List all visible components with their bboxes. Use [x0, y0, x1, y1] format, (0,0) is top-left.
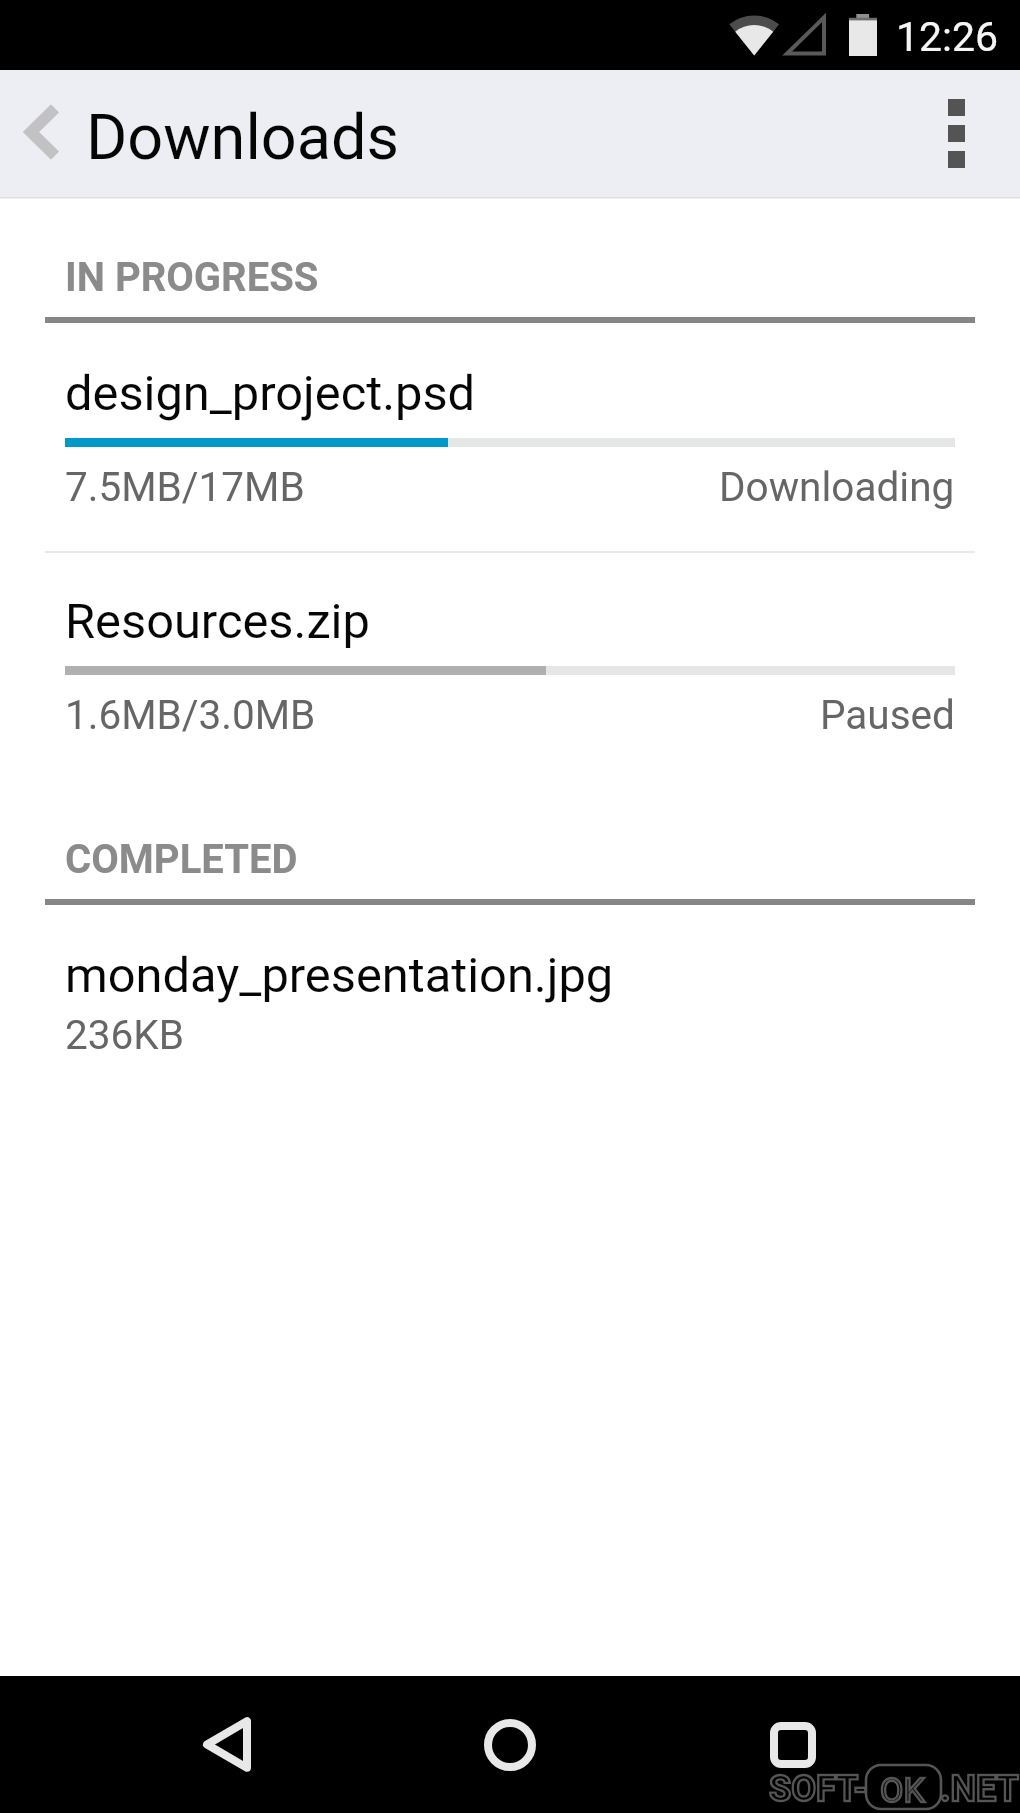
staticText: 12:26: [896, 13, 999, 61]
staticText: design_project.psd: [65, 365, 476, 422]
button[interactable]: Back: [87, 1676, 367, 1813]
button[interactable]: Home: [370, 1676, 650, 1813]
staticText: SOFT-: [769, 1768, 868, 1810]
staticText: IN PROGRESS: [65, 254, 319, 301]
button[interactable]: Recent apps: [653, 1676, 933, 1813]
button[interactable]: design_project.psd: [0, 347, 1020, 547]
staticText: Downloading: [719, 463, 955, 510]
button[interactable]: More options: [907, 70, 1005, 197]
staticText: 236KB: [65, 1011, 184, 1058]
staticText: Resources.zip: [65, 593, 370, 650]
staticText: OK: [880, 1770, 925, 1810]
staticText: COMPLETED: [65, 836, 298, 883]
staticText: 1.6MB/3.0MB: [65, 691, 316, 738]
staticText: .NET: [940, 1768, 1019, 1810]
staticText: Paused: [820, 691, 955, 738]
button[interactable]: Navigate up: [0, 70, 87, 197]
staticText: 7.5MB/17MB: [65, 463, 305, 510]
staticText: monday_presentation.jpg: [65, 947, 614, 1004]
button[interactable]: Resources.zip: [0, 575, 1020, 775]
button[interactable]: monday_presentation.jpg: [0, 923, 1020, 1069]
staticText: Downloads: [86, 101, 399, 175]
